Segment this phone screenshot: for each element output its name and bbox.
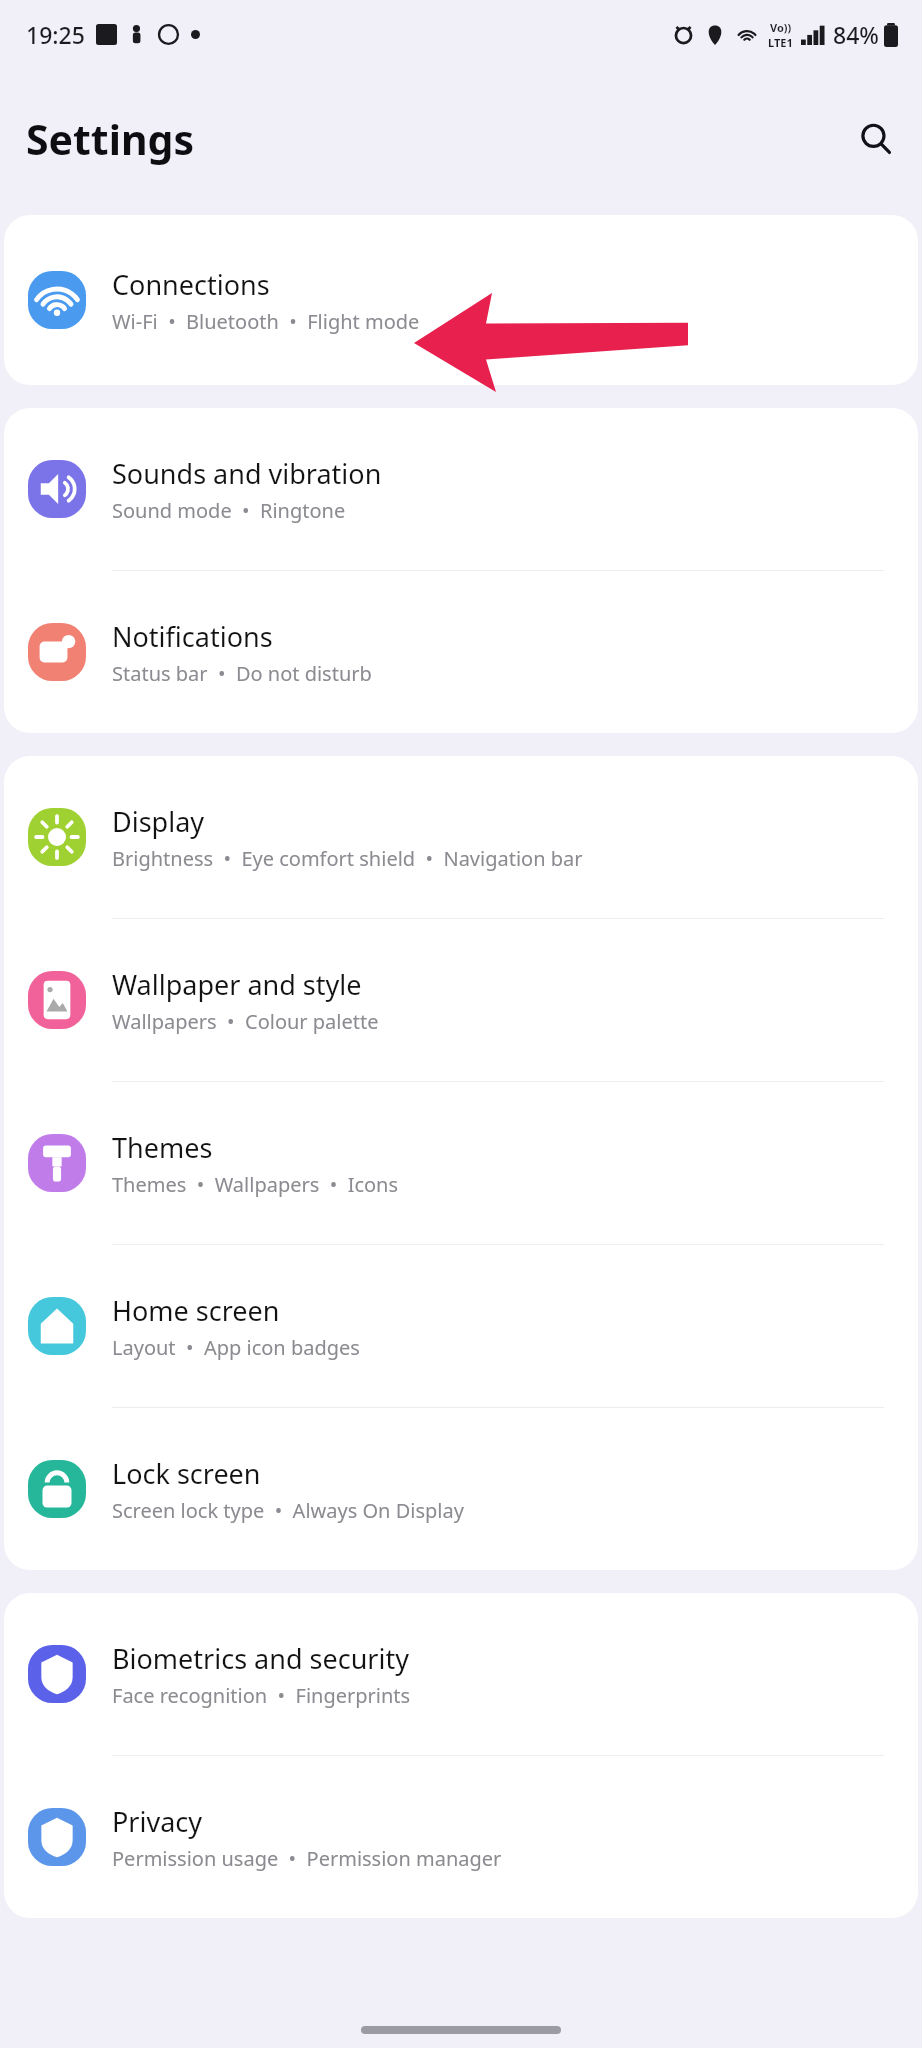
staticText: Display xyxy=(112,803,205,840)
staticText: Sound mode • Ringtone xyxy=(112,497,346,524)
staticText: Layout • App icon badges xyxy=(112,1334,360,1361)
button[interactable]: Home screen xyxy=(4,1245,918,1407)
staticText: 84% xyxy=(833,19,879,50)
button[interactable]: Themes xyxy=(4,1082,918,1244)
staticText: Wallpaper and style xyxy=(112,966,362,1003)
staticText: Screen lock type • Always On Display xyxy=(112,1497,464,1524)
staticText: Vo)) xyxy=(770,20,792,35)
staticText: Connections xyxy=(112,266,270,303)
button[interactable]: Search xyxy=(848,111,904,167)
button[interactable]: Sounds and vibration xyxy=(4,408,918,570)
staticText: Privacy xyxy=(112,1803,203,1840)
button[interactable]: Display xyxy=(4,756,918,918)
staticText: Themes • Wallpapers • Icons xyxy=(112,1171,399,1198)
staticText: Sounds and vibration xyxy=(112,455,382,492)
staticText: 19:25 xyxy=(26,19,85,50)
button[interactable]: Privacy xyxy=(4,1756,918,1918)
button[interactable]: Connections xyxy=(4,215,918,385)
staticText: Settings xyxy=(26,111,195,167)
button[interactable]: Notifications xyxy=(4,571,918,733)
staticText: Permission usage • Permission manager xyxy=(112,1845,502,1872)
staticText: Themes xyxy=(112,1129,213,1166)
button[interactable]: Wallpaper and style xyxy=(4,919,918,1081)
staticText: Wallpapers • Colour palette xyxy=(112,1008,379,1035)
staticText: Lock screen xyxy=(112,1455,261,1492)
button[interactable]: Lock screen xyxy=(4,1408,918,1570)
staticText: Home screen xyxy=(112,1292,280,1329)
staticText: Biometrics and security xyxy=(112,1640,409,1677)
staticText: Status bar • Do not disturb xyxy=(112,660,372,687)
staticText: LTE1 xyxy=(768,35,793,50)
staticText: Wi-Fi • Bluetooth • Flight mode xyxy=(112,308,420,335)
staticText: Notifications xyxy=(112,618,273,655)
staticText: Brightness • Eye comfort shield • Naviga… xyxy=(112,845,583,872)
button[interactable]: Biometrics and security xyxy=(4,1593,918,1755)
staticText: Face recognition • Fingerprints xyxy=(112,1682,411,1709)
